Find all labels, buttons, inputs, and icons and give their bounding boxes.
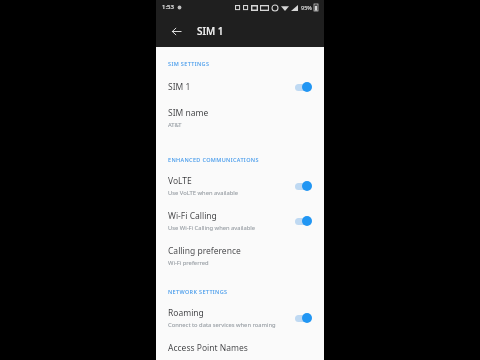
button[interactable]: Wi-Fi Calling bbox=[156, 207, 324, 235]
button[interactable]: Toggle bbox=[294, 311, 316, 325]
button[interactable]: Toggle bbox=[294, 179, 316, 193]
staticText: Access Point Names bbox=[168, 342, 248, 354]
button[interactable]: Toggle bbox=[294, 80, 316, 94]
staticText: AT&T bbox=[168, 121, 182, 129]
staticText: ENHANCED COMMUNICATIONS bbox=[168, 156, 259, 163]
staticText: Roaming bbox=[168, 307, 204, 319]
button[interactable]: SIM 1 bbox=[156, 77, 324, 97]
staticText: Use VoLTE when available bbox=[168, 189, 239, 197]
staticText: Wi-Fi preferred bbox=[168, 259, 209, 267]
button[interactable]: Toggle bbox=[294, 214, 316, 228]
staticText: Wi-Fi Calling bbox=[168, 210, 217, 222]
button[interactable]: Back bbox=[166, 21, 186, 41]
staticText: Calling preference bbox=[168, 245, 241, 257]
staticText: 95% bbox=[301, 4, 312, 11]
staticText: Connect to data services when roaming bbox=[168, 321, 276, 329]
button[interactable]: Access Point Names bbox=[156, 339, 324, 357]
button[interactable]: SIM name bbox=[156, 104, 324, 132]
staticText: Use Wi-Fi Calling when available bbox=[168, 224, 256, 232]
staticText: SIM name bbox=[168, 107, 209, 119]
button[interactable]: Roaming bbox=[156, 304, 324, 332]
button[interactable]: VoLTE bbox=[156, 172, 324, 200]
staticText: SIM 1 bbox=[197, 24, 224, 38]
staticText: 1:53 bbox=[162, 3, 174, 11]
staticText: VoLTE bbox=[168, 175, 192, 187]
staticText: SIM 1 bbox=[168, 81, 191, 93]
staticText: SIM SETTINGS bbox=[168, 60, 210, 67]
button[interactable]: Calling preference bbox=[156, 242, 324, 270]
staticText: NETWORK SETTINGS bbox=[168, 288, 228, 295]
